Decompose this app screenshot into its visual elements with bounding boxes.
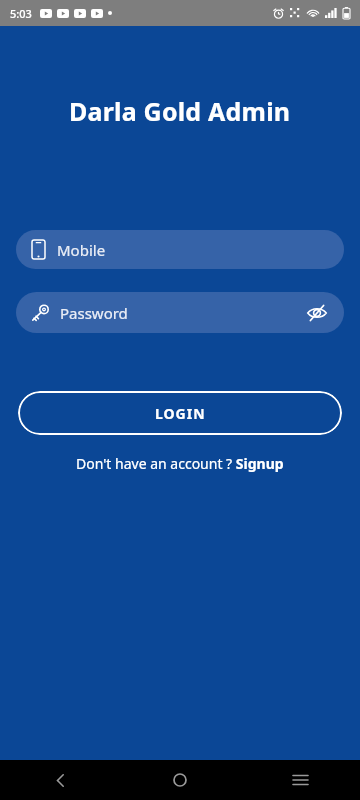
button[interactable]: Password bbox=[16, 292, 344, 333]
staticText: Password bbox=[60, 303, 128, 323]
staticText: Darla Gold Admin bbox=[69, 94, 291, 128]
staticText: Mobile bbox=[57, 240, 106, 260]
staticText: 5:03 bbox=[10, 6, 32, 21]
button[interactable]: Show password bbox=[302, 298, 332, 328]
button[interactable]: LOGIN bbox=[18, 391, 342, 435]
button[interactable]: Home bbox=[156, 760, 204, 800]
staticText: LOGIN bbox=[155, 404, 206, 423]
staticText: Don't have an account ? Signup bbox=[76, 454, 284, 473]
button[interactable]: Mobile bbox=[16, 230, 344, 269]
button[interactable]: Recent apps bbox=[276, 760, 324, 800]
button[interactable]: Don't have an account ? Signup bbox=[68, 452, 292, 475]
button[interactable]: Back bbox=[36, 760, 84, 800]
